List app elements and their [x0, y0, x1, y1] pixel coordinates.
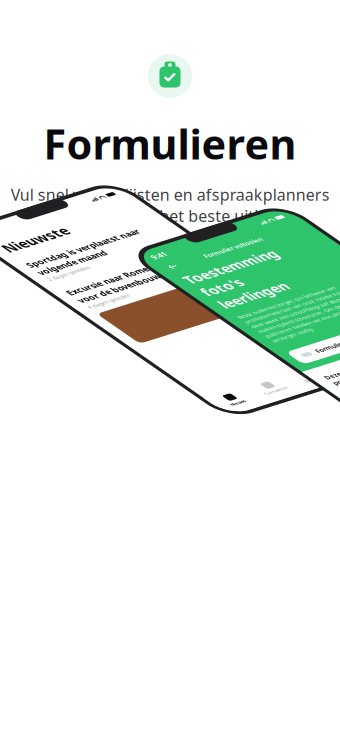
staticText: Toestemming foto's leerlingen	[143, 302, 261, 371]
button[interactable]: Terug	[142, 282, 159, 298]
staticText: Sportdag is verplaatst naar volgende maa…	[0, 298, 119, 326]
staticText: Beste ouder/verzorger, ten behoeve van p…	[143, 378, 287, 431]
staticText: Nieuwste	[0, 263, 56, 286]
staticText: Vul snel vragenlijsten en afspraakplanne…	[10, 184, 329, 226]
staticText: Formulieren	[43, 116, 296, 171]
staticText: 9:41	[143, 264, 161, 276]
staticText: Formulier voltooien	[191, 285, 266, 295]
